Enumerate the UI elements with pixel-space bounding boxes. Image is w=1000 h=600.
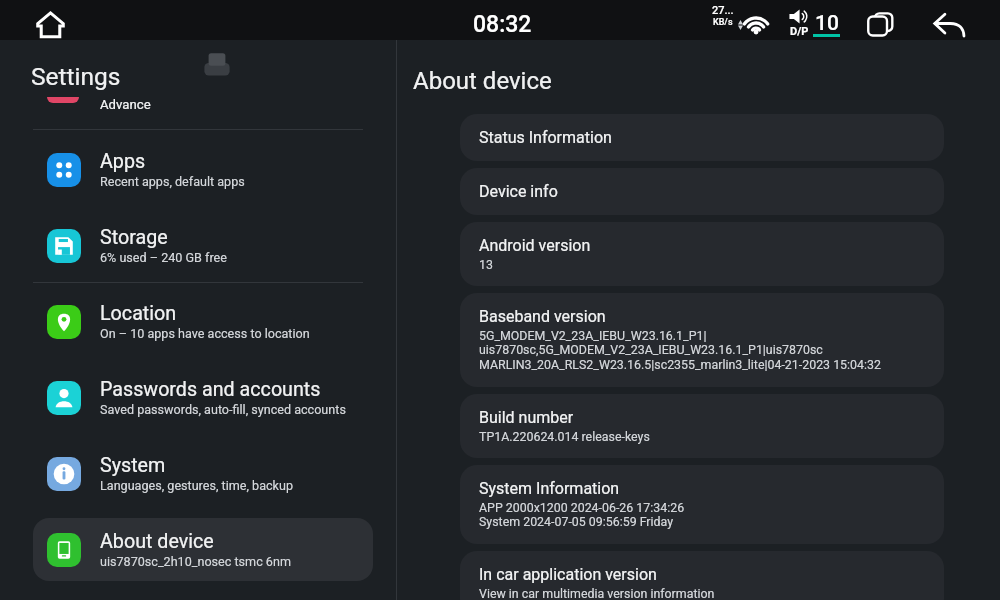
button[interactable]: Device info [460,168,944,215]
staticText: On – 10 apps have access to location [100,326,310,341]
staticText: Advance [100,97,151,112]
button[interactable]: System [33,442,373,505]
staticText: Passwords and accounts [100,378,321,401]
staticText: Languages, gestures, time, backup [100,478,293,493]
button[interactable]: Home [36,10,65,39]
staticText: Recent apps, default apps [100,174,245,189]
staticText: Apps [100,150,146,173]
staticText: 5G_MODEM_V2_23A_IEBU_W23.16.1_P1| uis787… [479,328,881,373]
button[interactable]: About device [33,518,373,581]
button[interactable]: Apps [33,138,373,201]
staticText: About device [100,530,214,553]
staticText: System [100,454,166,477]
staticText: Settings [31,62,121,91]
staticText: About device [413,67,552,95]
button[interactable]: Back [932,12,966,37]
button[interactable]: Build number [460,394,944,458]
button[interactable]: Status Information [460,114,944,161]
staticText: APP 2000x1200 2024-06-26 17:34:26 System… [479,500,685,530]
button[interactable]: System Information [460,465,944,544]
button[interactable]: Baseband version [460,293,944,387]
button[interactable]: Android version [460,222,944,286]
button[interactable]: Passwords and accounts [33,366,373,429]
staticText: Android version [479,236,591,255]
staticText: Saved passwords, auto-fill, synced accou… [100,402,346,417]
staticText: uis7870sc_2h10_nosec tsmc 6nm [100,554,291,569]
staticText: Device info [479,182,558,201]
staticText: Status Information [479,128,612,147]
staticText: 13 [479,257,493,272]
button[interactable]: In car application version [460,551,944,600]
staticText: 27... [712,4,734,17]
staticText: Baseband version [479,307,606,326]
staticText: Storage [100,226,168,249]
staticText: View in car multimedia version informati… [479,586,715,600]
staticText: In car application version [479,565,657,584]
button[interactable]: Storage [33,214,373,277]
staticText: Build number [479,408,574,427]
staticText: 6% used – 240 GB free [100,250,227,265]
staticText: KB/s [713,17,733,28]
staticText: 10 [815,11,839,36]
staticText: Location [100,302,177,325]
button[interactable]: Recent apps [866,11,894,37]
button[interactable]: Advance [0,80,396,110]
staticText: TP1A.220624.014 release-keys [479,429,650,444]
staticText: D/P [790,25,809,38]
button[interactable]: Location [33,290,373,353]
staticText: 08:32 [473,11,532,38]
staticText: System Information [479,479,620,498]
